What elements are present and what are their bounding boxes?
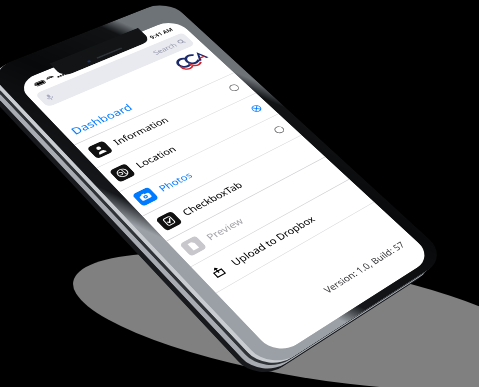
button[interactable]: Search bbox=[14, 46, 361, 92]
button[interactable]: Information bbox=[14, 205, 357, 277]
staticText: Dashboard bbox=[16, 156, 146, 190]
staticText: Location bbox=[64, 300, 149, 329]
staticText: Information bbox=[64, 227, 183, 256]
button[interactable]: Photos bbox=[14, 351, 357, 387]
button[interactable]: Location bbox=[14, 278, 357, 350]
